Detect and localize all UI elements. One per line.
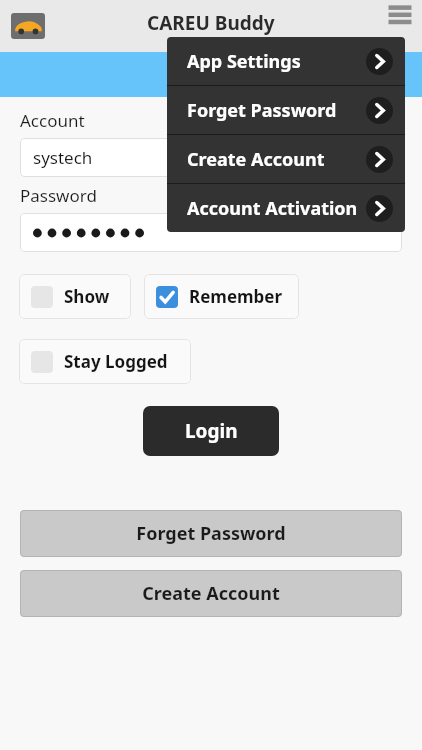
staticText: Account: [20, 109, 85, 132]
staticText: Login: [185, 418, 238, 444]
button[interactable]: Stay Logged: [19, 339, 191, 384]
button[interactable]: Show: [19, 274, 131, 319]
button[interactable]: Create Account: [20, 570, 402, 617]
staticText: Create Account: [187, 147, 325, 172]
button[interactable]: systech: [20, 138, 402, 177]
button[interactable]: Remember: [144, 274, 299, 319]
button[interactable]: Create Account: [167, 135, 405, 183]
staticText: App Settings: [187, 49, 301, 74]
button[interactable]: Forget Password: [20, 510, 402, 557]
staticText: systech: [33, 146, 93, 169]
button[interactable]: Menu: [386, 1, 414, 31]
button[interactable]: Account Activation: [167, 184, 405, 232]
staticText: Account Activation: [187, 196, 358, 221]
staticText: Password: [20, 184, 97, 207]
button[interactable]: Login: [143, 406, 279, 456]
staticText: Stay Logged: [64, 350, 168, 373]
button[interactable]: [20, 213, 402, 252]
staticText: Create Account: [142, 581, 280, 606]
staticText: Forget Password: [187, 98, 337, 123]
staticText: Forget Password: [136, 521, 286, 546]
staticText: Show: [64, 285, 110, 308]
button[interactable]: App icon: [11, 13, 45, 39]
staticText: CAREU Buddy: [147, 10, 275, 36]
staticText: Remember: [189, 285, 283, 308]
button[interactable]: App Settings: [167, 37, 405, 85]
button[interactable]: Forget Password: [167, 86, 405, 134]
